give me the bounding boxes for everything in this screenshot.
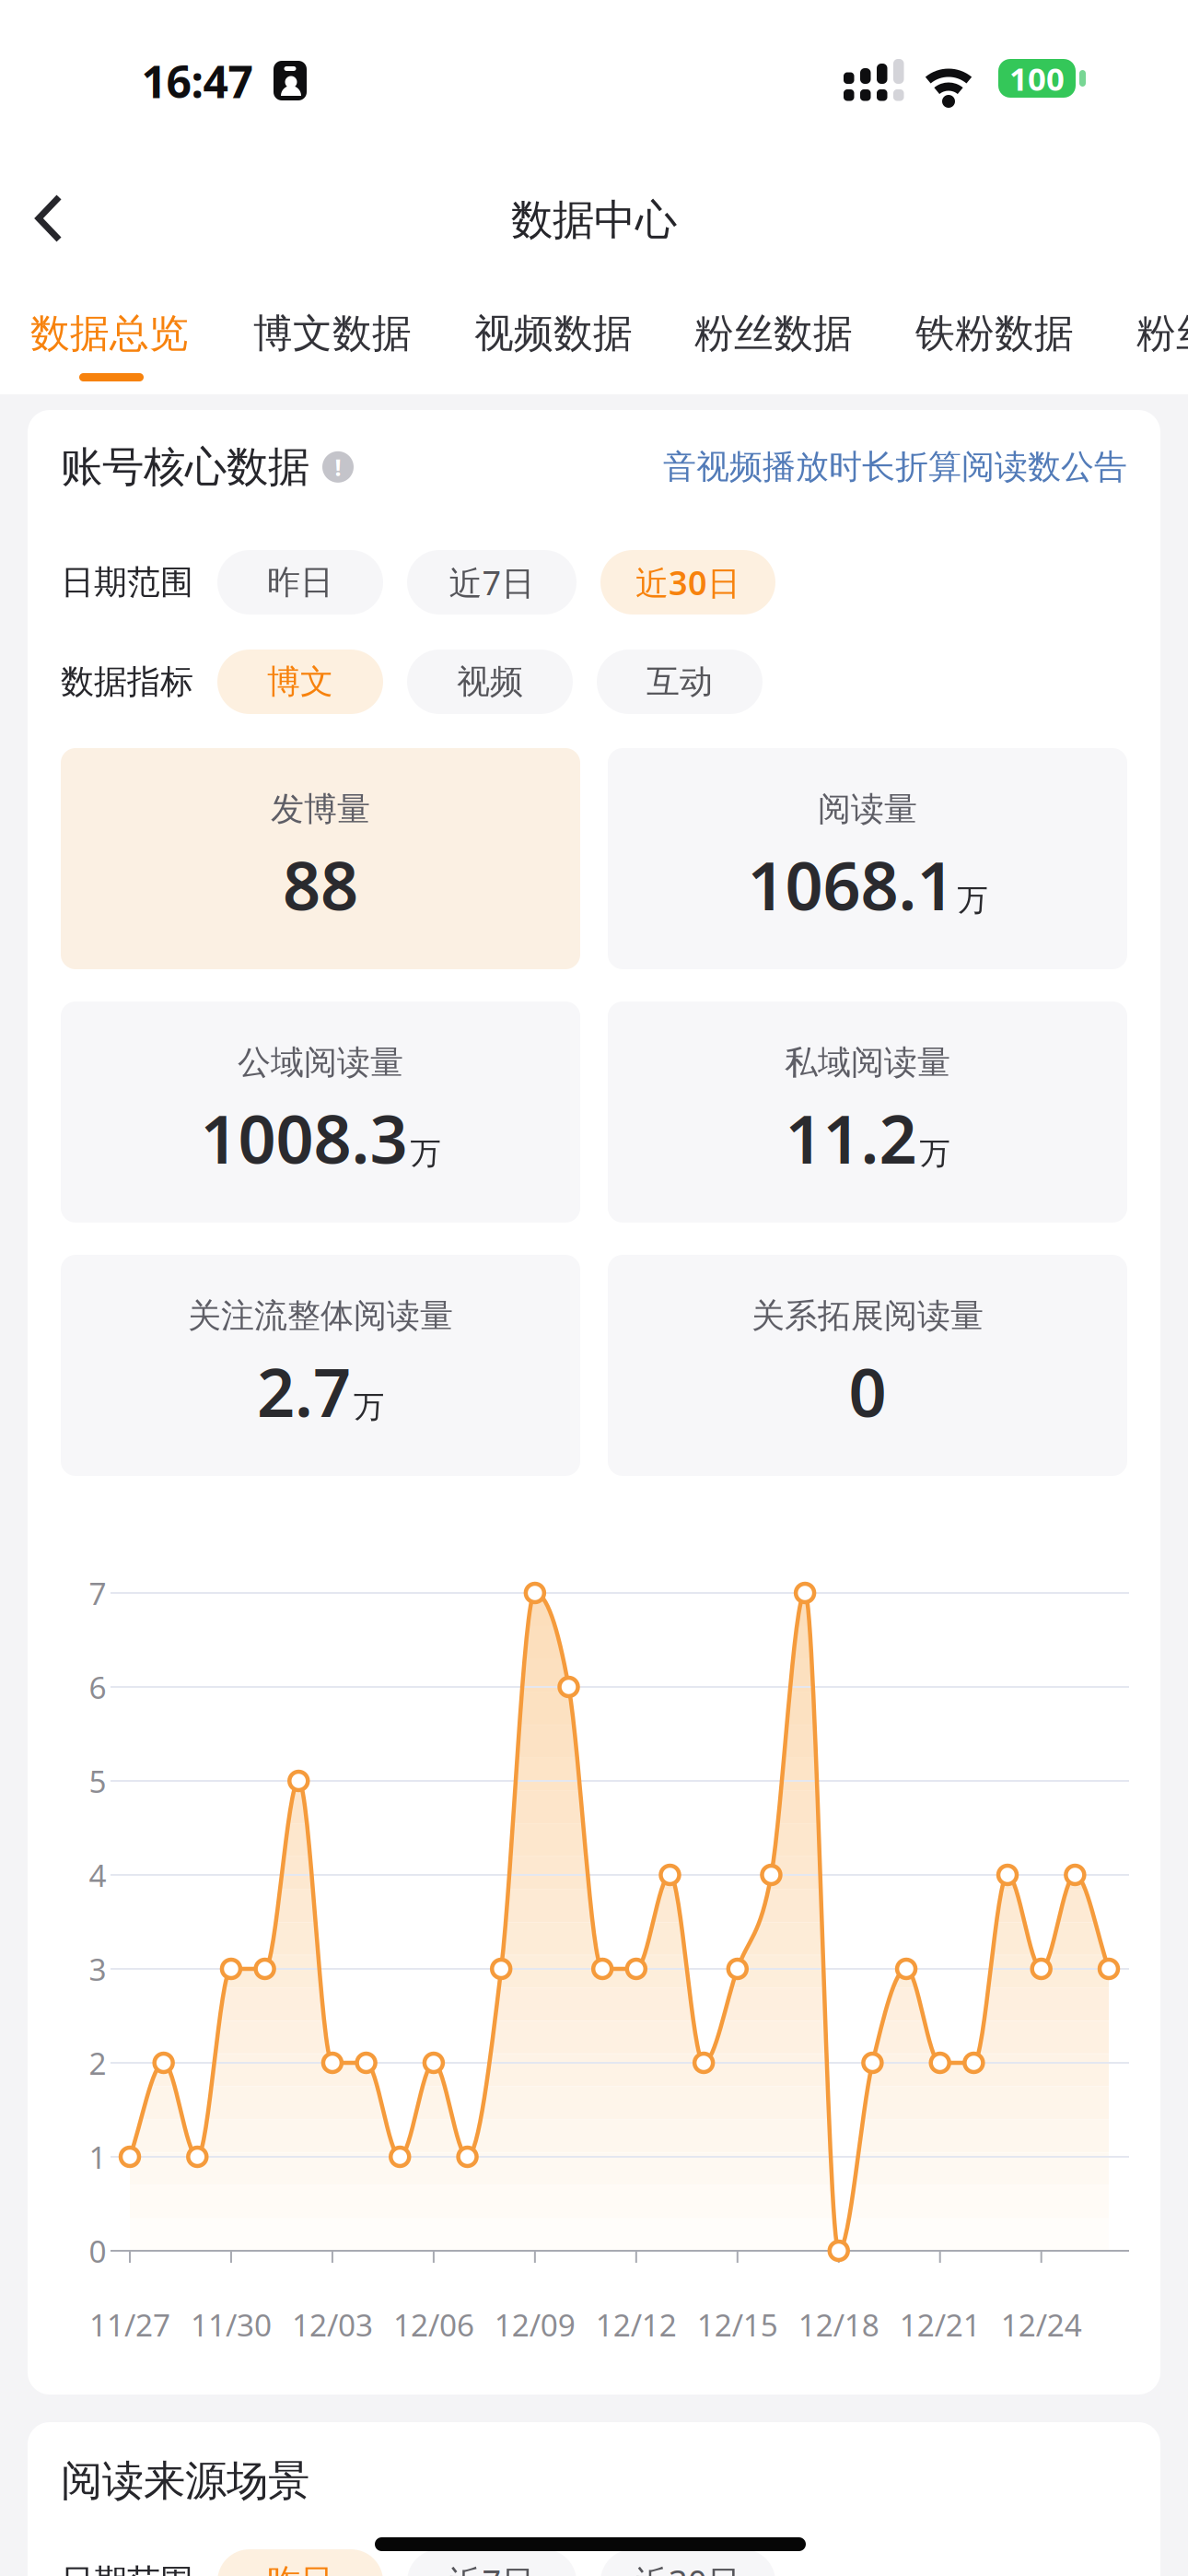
staticText: 铁粉数据 [915, 309, 1074, 358]
staticText: 数据中心 [511, 195, 677, 246]
staticText: 1008.3 [200, 1094, 408, 1182]
staticText: 100 [1009, 57, 1065, 100]
staticText: 关系拓展阅读量 [751, 1295, 984, 1336]
staticText: 12/06 [393, 2304, 474, 2345]
staticText: 阅读来源场景 [61, 2455, 309, 2507]
staticText: 音视频播放时长折算阅读数公告 [663, 447, 1127, 487]
staticText: 近7日 [449, 560, 535, 604]
button[interactable] [35, 195, 87, 247]
button[interactable]: 近7日 [407, 2549, 577, 2576]
staticText: 1 [89, 2136, 106, 2177]
staticText: 近30日 [635, 2560, 740, 2576]
staticText: ! [335, 451, 341, 482]
button[interactable]: 近7日 [407, 550, 577, 615]
button[interactable]: 博文 [217, 650, 383, 714]
button[interactable]: 铁粉数据 [915, 309, 1074, 358]
button[interactable]: 近30日 [600, 550, 775, 615]
staticText: 12/15 [697, 2304, 778, 2345]
staticText: 12/21 [899, 2304, 981, 2345]
staticText: 0 [89, 2230, 106, 2271]
staticText: 2.7 [257, 1347, 351, 1435]
button[interactable]: 公域阅读量 [61, 1001, 580, 1223]
staticText: 7 [89, 1573, 106, 1613]
staticText: 12/12 [596, 2304, 677, 2345]
staticText: 11/30 [191, 2304, 272, 2345]
staticText: 粉丝趋势 [1136, 309, 1188, 358]
staticText: 关注流整体阅读量 [188, 1295, 453, 1336]
button[interactable]: 数据总览 [30, 309, 189, 358]
button[interactable]: 粉丝趋势 [1136, 309, 1188, 358]
staticText: 日期范围 [61, 562, 193, 603]
staticText: 2 [89, 2042, 106, 2083]
staticText: 1068.1 [747, 841, 955, 929]
staticText: 0 [849, 1347, 886, 1435]
button[interactable]: 私域阅读量 [608, 1001, 1127, 1223]
staticText: 阅读量 [818, 789, 917, 829]
staticText: 万 [920, 1135, 950, 1172]
button[interactable]: 粉丝数据 [694, 309, 853, 358]
button[interactable]: 阅读量 [608, 748, 1127, 969]
button[interactable]: 近30日 [600, 2549, 775, 2576]
staticText: 5 [89, 1761, 106, 1801]
staticText: 视频 [457, 661, 523, 702]
button[interactable]: 博文数据 [253, 309, 412, 358]
button[interactable]: 视频数据 [474, 309, 633, 358]
button[interactable]: 互动 [597, 650, 763, 714]
staticText: 12/09 [494, 2304, 575, 2345]
staticText: 11.2 [785, 1094, 917, 1182]
staticText: 账号核心数据 [61, 441, 309, 493]
button[interactable]: 关系拓展阅读量 [608, 1255, 1127, 1476]
staticText: 发博量 [271, 789, 370, 829]
staticText: 12/18 [798, 2304, 879, 2345]
staticText: 万 [410, 1135, 441, 1172]
staticText: 12/24 [1001, 2304, 1082, 2345]
staticText: 近30日 [635, 560, 740, 604]
staticText: 昨日 [267, 2561, 333, 2576]
staticText: 私域阅读量 [785, 1042, 950, 1083]
button[interactable]: 音视频播放时长折算阅读数公告 [663, 447, 1127, 487]
staticText: 公域阅读量 [238, 1042, 403, 1083]
staticText: 数据指标 [61, 661, 193, 702]
staticText: 88 [283, 841, 358, 929]
staticText: 昨日 [267, 562, 333, 603]
button[interactable]: 昨日 [217, 2549, 383, 2576]
staticText: 6 [89, 1667, 106, 1707]
staticText: 16:47 [141, 52, 253, 110]
staticText: 12/03 [292, 2304, 373, 2345]
staticText: 11/27 [89, 2304, 170, 2345]
staticText: 博文数据 [253, 309, 412, 358]
staticText: 粉丝数据 [694, 309, 853, 358]
staticText: 数据总览 [30, 309, 189, 358]
staticText: 万 [957, 881, 988, 919]
button[interactable]: 视频 [407, 650, 573, 714]
staticText: 万 [354, 1388, 384, 1426]
button[interactable]: 关注流整体阅读量 [61, 1255, 580, 1476]
staticText: 3 [89, 1948, 106, 1989]
staticText: 日期范围 [61, 2561, 193, 2576]
staticText: 博文 [267, 661, 333, 702]
button[interactable]: 昨日 [217, 550, 383, 615]
staticText: 互动 [646, 661, 713, 702]
button[interactable]: 发博量 [61, 748, 580, 969]
staticText: 视频数据 [474, 309, 633, 358]
staticText: 4 [89, 1855, 106, 1895]
staticText: 近7日 [449, 2560, 535, 2576]
